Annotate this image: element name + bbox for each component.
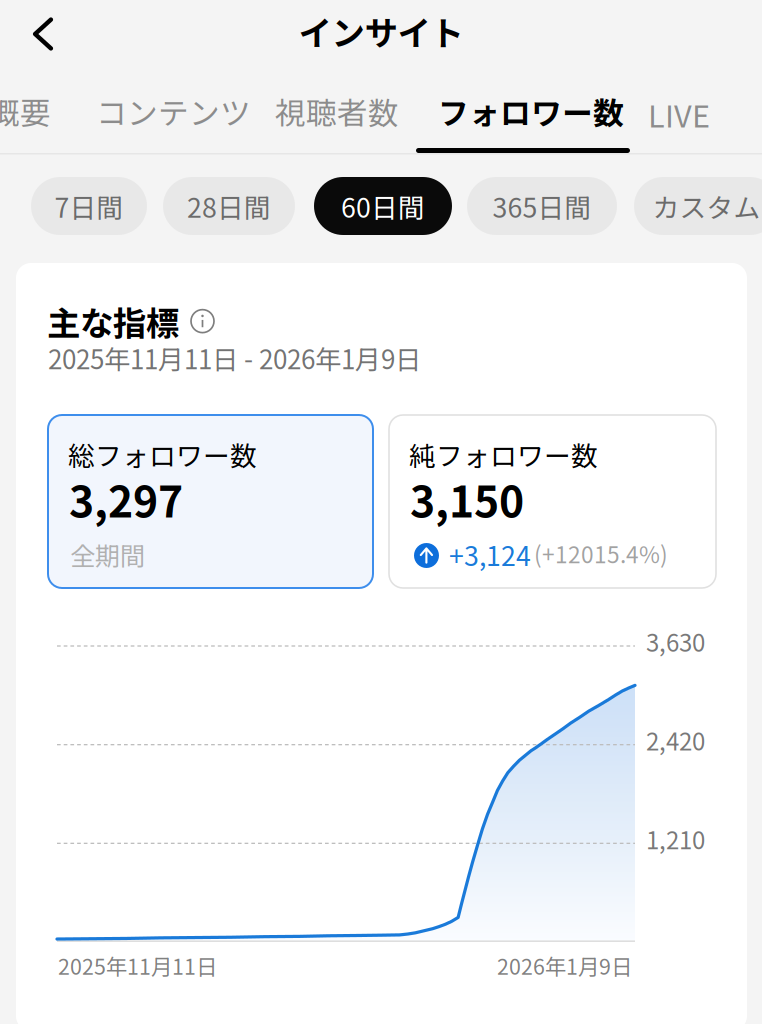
- staticText: 全期間: [70, 536, 145, 573]
- button[interactable]: コンテンツ: [96, 89, 251, 133]
- staticText: カスタム: [652, 187, 760, 225]
- staticText: 60日間: [341, 187, 425, 225]
- button[interactable]: 概要: [0, 89, 51, 133]
- staticText: 2026年1月9日: [497, 950, 632, 981]
- button[interactable]: 7日間: [31, 177, 147, 235]
- staticText: 7日間: [54, 187, 123, 225]
- staticText: 主な指標: [47, 297, 179, 345]
- button[interactable]: 365日間: [467, 177, 617, 235]
- staticText: 28日間: [187, 187, 271, 225]
- staticText: 3,297: [69, 468, 183, 530]
- staticText: 2025年11月11日 - 2026年1月9日: [48, 339, 421, 377]
- button[interactable]: 60日間: [314, 177, 452, 235]
- button[interactable]: 純フォロワー数: [389, 415, 716, 588]
- staticText: 概要: [0, 89, 51, 133]
- staticText: 2025年11月11日: [58, 950, 217, 981]
- button[interactable]: カスタム: [634, 177, 762, 235]
- staticText: LIVE: [648, 92, 710, 136]
- button[interactable]: 総フォロワー数: [48, 415, 373, 588]
- button[interactable]: フォロワー数: [438, 89, 624, 133]
- staticText: 純フォロワー数: [409, 435, 598, 474]
- button[interactable]: LIVE: [648, 92, 710, 136]
- staticText: 2,420: [646, 723, 705, 757]
- staticText: 1,210: [646, 821, 705, 856]
- button[interactable]: Back: [20, 11, 66, 57]
- staticText: 3,150: [410, 468, 524, 530]
- staticText: +3,124: [449, 535, 531, 574]
- button[interactable]: 視聴者数: [275, 89, 399, 133]
- button[interactable]: 28日間: [163, 177, 295, 235]
- staticText: (+12015.4%): [534, 537, 668, 570]
- staticText: インサイト: [298, 7, 463, 55]
- staticText: フォロワー数: [438, 89, 624, 133]
- staticText: 総フォロワー数: [68, 435, 257, 474]
- staticText: 365日間: [492, 187, 591, 225]
- staticText: コンテンツ: [96, 89, 251, 133]
- staticText: 視聴者数: [275, 89, 399, 133]
- staticText: 3,630: [646, 624, 705, 659]
